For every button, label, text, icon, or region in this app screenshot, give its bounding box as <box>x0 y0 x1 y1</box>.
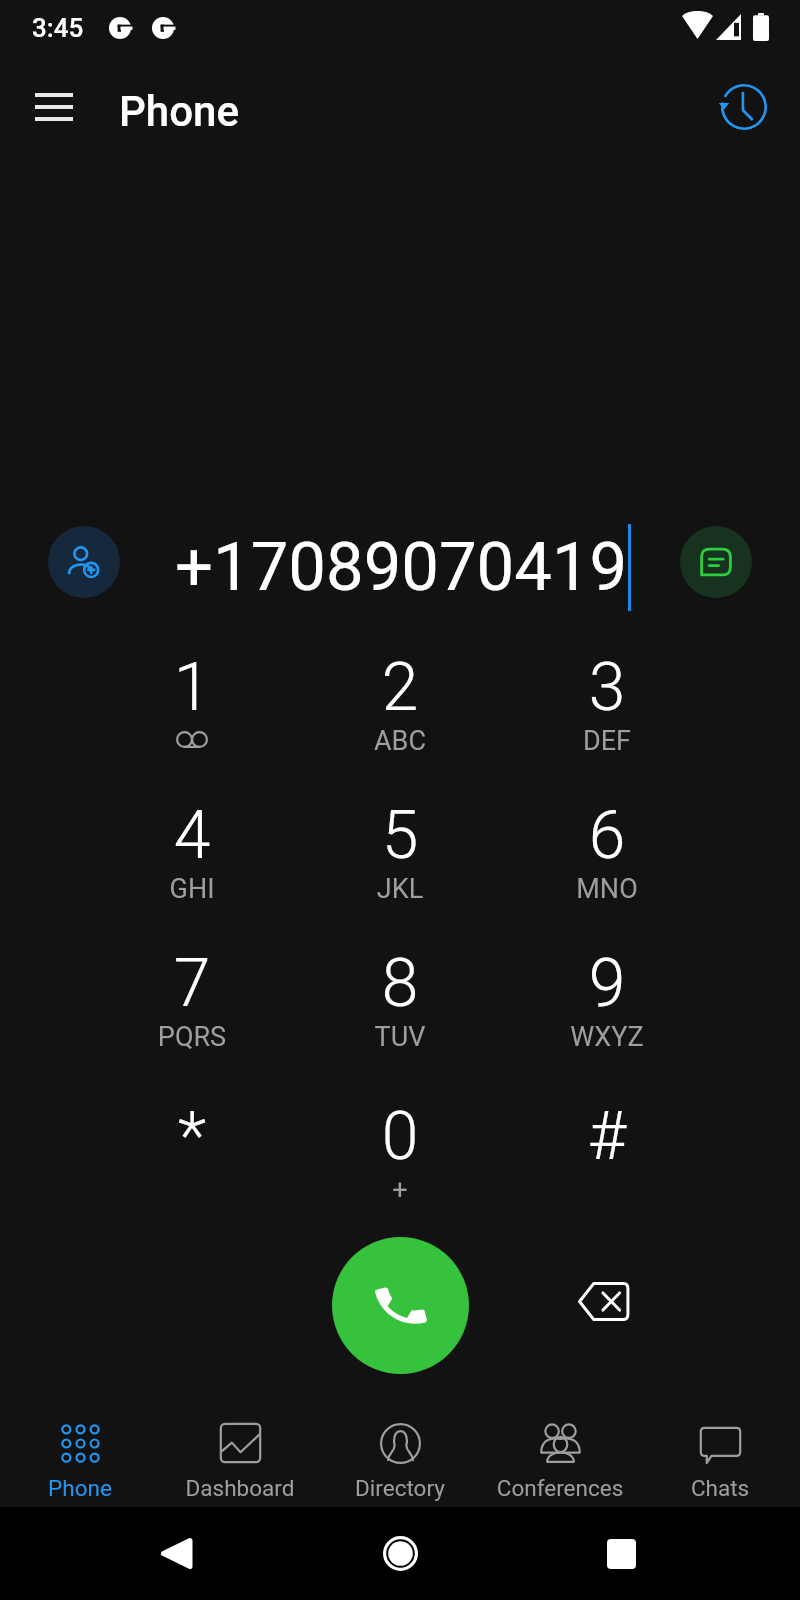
staticText: 9 <box>503 945 711 1022</box>
staticText: MNO <box>503 873 711 905</box>
staticText: 0 <box>296 1098 504 1175</box>
button[interactable]: Directory <box>320 1400 480 1507</box>
button[interactable]: Recent apps <box>581 1507 661 1600</box>
staticText: 8 <box>296 945 504 1022</box>
button[interactable]: 6 <box>503 760 711 908</box>
staticText: 4 <box>88 797 296 874</box>
button[interactable]: 2 <box>296 612 504 760</box>
staticText: * <box>88 1098 296 1175</box>
button[interactable]: Dashboard <box>160 1400 320 1507</box>
button[interactable]: 9 <box>503 908 711 1056</box>
button[interactable]: Call <box>332 1237 469 1374</box>
staticText: GHI <box>88 873 296 905</box>
button[interactable]: Send message <box>680 526 752 598</box>
staticText: 1 <box>88 649 296 726</box>
staticText: Dashboard <box>160 1475 320 1501</box>
staticText: +17089070419 <box>175 528 628 607</box>
staticText: 2 <box>296 649 504 726</box>
staticText: DEF <box>503 725 711 757</box>
staticText: 3:45 <box>32 13 84 43</box>
button[interactable]: Backspace <box>556 1253 652 1349</box>
staticText: JKL <box>296 873 504 905</box>
button[interactable]: Back <box>136 1507 216 1600</box>
staticText: Conferences <box>480 1475 640 1501</box>
button[interactable]: Home <box>360 1507 440 1600</box>
button[interactable]: 1 <box>88 612 296 760</box>
staticText: + <box>296 1174 504 1206</box>
button[interactable]: 7 <box>88 908 296 1056</box>
button[interactable]: 3 <box>503 612 711 760</box>
staticText: WXYZ <box>503 1021 711 1053</box>
staticText: 7 <box>88 945 296 1022</box>
button[interactable]: Add contact <box>48 526 120 598</box>
staticText: # <box>503 1098 711 1175</box>
button[interactable]: # <box>503 1061 711 1209</box>
button[interactable]: 4 <box>88 760 296 908</box>
button[interactable]: Call history <box>704 79 784 135</box>
button[interactable]: 5 <box>296 760 504 908</box>
staticText: PQRS <box>88 1021 296 1053</box>
staticText: 3 <box>503 649 711 726</box>
button[interactable]: * <box>88 1061 296 1209</box>
button[interactable]: Chats <box>640 1400 800 1507</box>
button[interactable]: Navigation menu <box>16 79 92 135</box>
staticText: Phone <box>119 87 239 136</box>
staticText: 5 <box>296 797 504 874</box>
staticText: Directory <box>320 1475 480 1501</box>
staticText: TUV <box>296 1021 504 1053</box>
staticText: ABC <box>296 725 504 757</box>
button[interactable]: 8 <box>296 908 504 1056</box>
staticText: Phone <box>0 1475 160 1501</box>
button[interactable]: Conferences <box>480 1400 640 1507</box>
button[interactable]: Phone <box>0 1400 160 1507</box>
button[interactable]: 0 <box>296 1061 504 1209</box>
staticText: 6 <box>503 797 711 874</box>
staticText: Chats <box>640 1475 800 1501</box>
